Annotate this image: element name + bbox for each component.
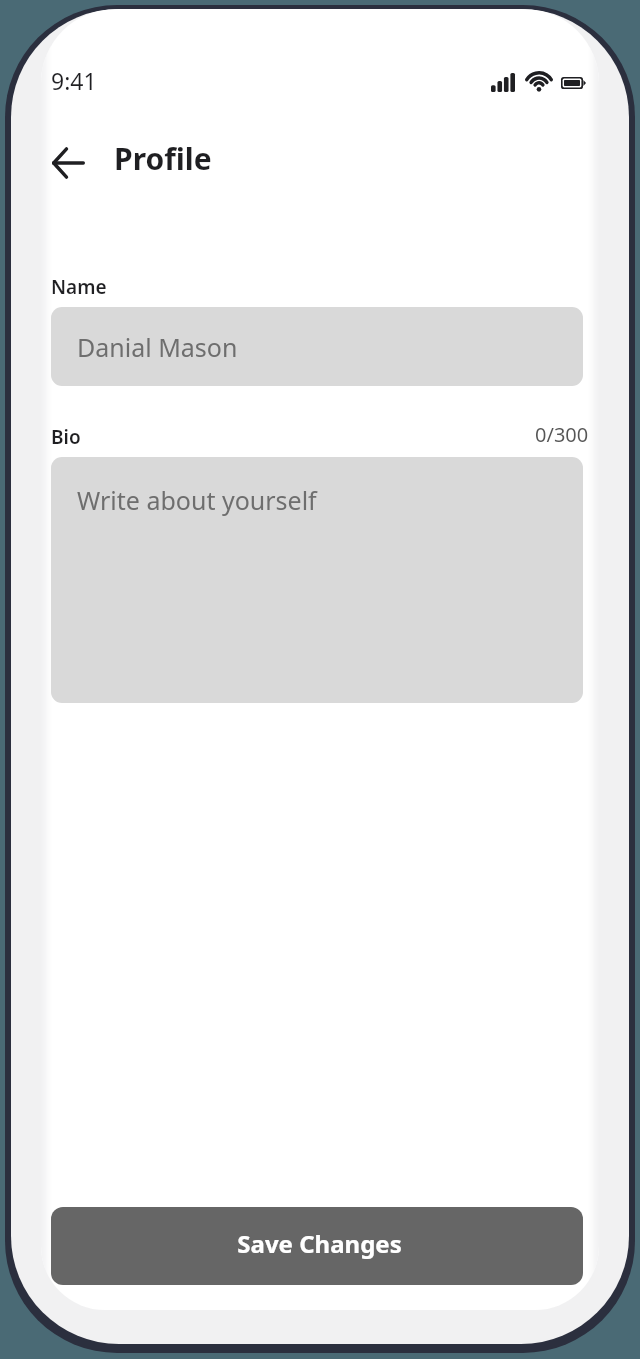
staticText: Name bbox=[51, 274, 107, 300]
staticText: Danial Mason bbox=[77, 330, 238, 364]
staticText: 0/300 bbox=[535, 421, 589, 448]
button[interactable]: Save Changes bbox=[51, 1207, 583, 1285]
staticText: Write about yourself bbox=[77, 483, 317, 517]
button[interactable]: Write about yourself bbox=[51, 457, 583, 703]
staticText: 9:41 bbox=[51, 65, 97, 96]
button[interactable]: Danial Mason bbox=[51, 307, 583, 386]
button[interactable]: Back bbox=[45, 140, 91, 186]
staticText: Profile bbox=[114, 138, 212, 179]
staticText: Save Changes bbox=[237, 1227, 402, 1260]
staticText: Bio bbox=[51, 424, 81, 450]
